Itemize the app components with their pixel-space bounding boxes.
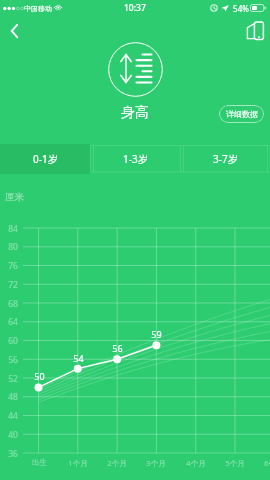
staticText: 36 <box>8 448 18 460</box>
staticText: 54% <box>233 3 249 14</box>
staticText: 4个月 <box>186 458 206 468</box>
staticText: 0-1岁 <box>33 152 58 166</box>
button[interactable]: 详细数据 <box>219 105 264 123</box>
button[interactable]: 1-3岁 <box>90 144 180 174</box>
button[interactable]: Back <box>0 16 30 45</box>
staticText: 身高 <box>121 104 149 122</box>
staticText: 详细数据 <box>226 109 258 119</box>
staticText: 5个月 <box>225 458 245 468</box>
staticText: 10:37 <box>124 2 146 14</box>
button[interactable]: Bind device <box>238 16 270 45</box>
staticText: 1-3岁 <box>123 152 148 166</box>
staticText: 80 <box>8 241 18 253</box>
staticText: 48 <box>8 391 18 403</box>
staticText: 1个月 <box>68 458 88 468</box>
staticText: 50 <box>34 370 45 382</box>
staticText: 出生 <box>32 458 47 467</box>
staticText: 84 <box>8 223 18 235</box>
staticText: 68 <box>8 298 18 310</box>
staticText: 56 <box>8 354 18 366</box>
staticText: 3-7岁 <box>213 152 238 166</box>
staticText: 厘米 <box>5 191 24 203</box>
staticText: 中国移动 <box>24 4 52 13</box>
button[interactable]: 0-1岁 <box>0 144 90 174</box>
staticText: 40 <box>8 429 18 441</box>
staticText: 3个月 <box>146 458 166 468</box>
staticText: 72 <box>8 279 18 291</box>
staticText: 2个月 <box>107 458 127 468</box>
staticText: 44 <box>8 410 18 422</box>
staticText: 59 <box>151 328 162 340</box>
staticText: 76 <box>8 260 18 272</box>
staticText: 6个月 <box>264 458 270 468</box>
staticText: 56 <box>112 342 123 354</box>
staticText: 60 <box>8 335 18 347</box>
staticText: 52 <box>8 373 18 385</box>
staticText: 64 <box>8 316 18 328</box>
staticText: 54 <box>73 352 84 364</box>
button[interactable]: 3-7岁 <box>180 144 270 174</box>
